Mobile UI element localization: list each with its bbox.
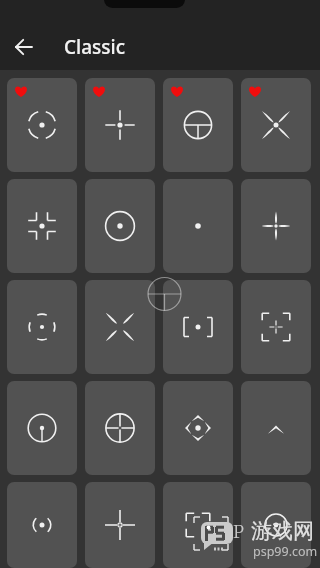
button[interactable]: Reticle 19 bbox=[163, 482, 233, 568]
button[interactable]: Reticle 20 bbox=[241, 482, 311, 568]
button[interactable]: Reticle 16 bbox=[241, 381, 311, 475]
button[interactable]: Reticle 17 bbox=[7, 482, 77, 568]
button[interactable]: Reticle 4 bbox=[241, 78, 311, 172]
staticText: psp99.com bbox=[253, 543, 318, 560]
button[interactable]: Reticle 10 bbox=[85, 280, 155, 374]
button[interactable]: Reticle 15 bbox=[163, 381, 233, 475]
button[interactable]: Reticle 14 bbox=[85, 381, 155, 475]
button[interactable]: Reticle 12 bbox=[241, 280, 311, 374]
button[interactable]: Reticle 13 bbox=[7, 381, 77, 475]
button[interactable]: Reticle 11 bbox=[163, 280, 233, 374]
button[interactable]: Back bbox=[8, 31, 40, 63]
button[interactable]: Reticle 6 bbox=[85, 179, 155, 273]
staticText: 游戏网 bbox=[251, 518, 314, 544]
button[interactable]: Reticle 9 bbox=[7, 280, 77, 374]
button[interactable]: Reticle 2 bbox=[85, 78, 155, 172]
button[interactable]: Reticle 8 bbox=[241, 179, 311, 273]
button[interactable]: Reticle 1 bbox=[7, 78, 77, 172]
staticText: P bbox=[233, 518, 245, 544]
button[interactable]: Reticle 18 bbox=[85, 482, 155, 568]
button[interactable]: Reticle 3 bbox=[163, 78, 233, 172]
staticText: Classic bbox=[64, 34, 125, 60]
button[interactable]: Reticle 5 bbox=[7, 179, 77, 273]
button[interactable]: Reticle 7 bbox=[163, 179, 233, 273]
